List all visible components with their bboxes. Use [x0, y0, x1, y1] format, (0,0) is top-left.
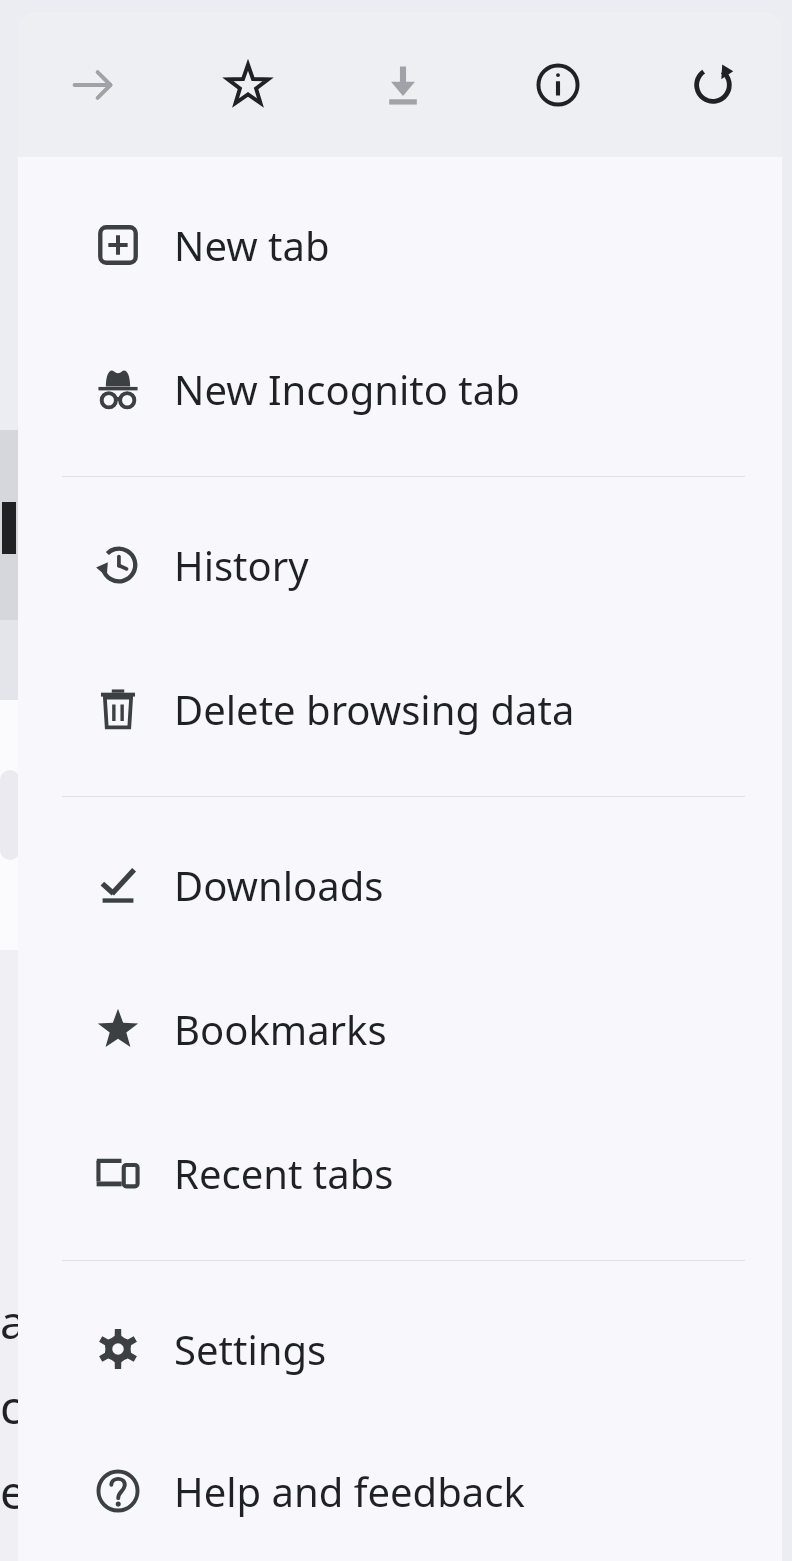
staticText: Recent tabs: [174, 1146, 394, 1200]
button[interactable]: Recent tabs: [18, 1101, 782, 1245]
staticText: New Incognito tab: [174, 362, 520, 416]
button[interactable]: Settings: [18, 1277, 782, 1421]
staticText: Downloads: [174, 858, 384, 912]
staticText: Help and feedback: [174, 1464, 525, 1518]
button[interactable]: Help and feedback: [18, 1421, 782, 1561]
button[interactable]: Bookmarks: [18, 957, 782, 1101]
button[interactable]: Downloads: [18, 813, 782, 957]
button[interactable]: Page info: [510, 37, 606, 133]
staticText: New tab: [174, 218, 330, 272]
staticText: Bookmarks: [174, 1002, 387, 1056]
staticText: History: [174, 538, 309, 592]
button[interactable]: Download page: [355, 37, 451, 133]
button[interactable]: Bookmark this page: [200, 37, 296, 133]
staticText: Delete browsing data: [174, 682, 575, 736]
button[interactable]: New tab: [18, 173, 782, 317]
staticText: c: [0, 1375, 20, 1438]
button[interactable]: Forward: [45, 37, 141, 133]
staticText: Settings: [174, 1322, 327, 1376]
button[interactable]: Reload: [665, 37, 761, 133]
button[interactable]: New Incognito tab: [18, 317, 782, 461]
staticText: e: [0, 1460, 20, 1523]
staticText: a: [0, 1290, 20, 1353]
button[interactable]: History: [18, 493, 782, 637]
button[interactable]: Delete browsing data: [18, 637, 782, 781]
